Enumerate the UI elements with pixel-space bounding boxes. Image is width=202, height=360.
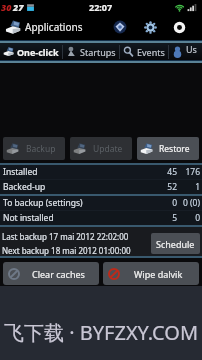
button[interactable]: Schedule xyxy=(151,233,200,254)
staticText: 5 xyxy=(172,212,177,224)
staticText: Startups xyxy=(80,46,116,58)
button[interactable]: Update xyxy=(70,137,132,160)
staticText: 176 xyxy=(185,166,200,178)
button[interactable]: Backed-up xyxy=(0,180,202,194)
button[interactable]: Not installed xyxy=(0,211,202,225)
button[interactable]: Startups xyxy=(63,43,119,60)
staticText: 0 xyxy=(195,212,200,224)
button[interactable]: Settings xyxy=(139,16,161,38)
button[interactable]: One-click xyxy=(0,43,62,60)
staticText: 飞下载 · BYFZXY.COM xyxy=(4,319,199,346)
staticText: One-click xyxy=(17,46,59,58)
button[interactable]: To backup (settings) xyxy=(0,196,202,210)
staticText: 52 xyxy=(167,181,177,193)
button[interactable]: Wipe dalvik xyxy=(103,262,199,285)
staticText: Schedule xyxy=(156,238,195,250)
staticText: Update xyxy=(93,143,123,155)
button[interactable]: Restore xyxy=(137,137,199,160)
staticText: Applications xyxy=(25,20,83,34)
staticText: 1 xyxy=(195,181,200,193)
staticText: Backup xyxy=(26,143,56,155)
staticText: Restore xyxy=(159,143,190,155)
staticText: 22:07 xyxy=(89,1,113,13)
button[interactable]: Clear caches xyxy=(3,262,99,285)
staticText: Clear caches xyxy=(32,268,85,280)
staticText: To backup (settings) xyxy=(3,197,83,209)
staticText: 45 xyxy=(167,166,177,178)
button[interactable]: Menu xyxy=(168,16,190,38)
button[interactable]: Events xyxy=(120,43,168,60)
staticText: 0 xyxy=(172,197,177,209)
button[interactable]: Use xyxy=(169,43,202,60)
staticText: Installed xyxy=(3,166,38,178)
staticText: Backed-up xyxy=(3,181,46,193)
staticText: Last backup 17 mai 2012 22:02:00 xyxy=(2,231,129,242)
staticText: Next backup 18 mai 2012 01:00:00 xyxy=(2,245,131,256)
staticText: 27 xyxy=(13,1,24,13)
staticText: Wipe dalvik xyxy=(134,268,183,280)
button[interactable]: Installed xyxy=(0,165,202,179)
staticText: 0 (0) xyxy=(182,197,200,209)
button[interactable]: Backup xyxy=(3,137,65,160)
staticText: Events xyxy=(137,46,165,58)
staticText: Use xyxy=(186,43,199,60)
staticText: Not installed xyxy=(3,212,54,224)
staticText: 30 xyxy=(1,1,12,13)
button[interactable]: Filter xyxy=(109,16,131,38)
